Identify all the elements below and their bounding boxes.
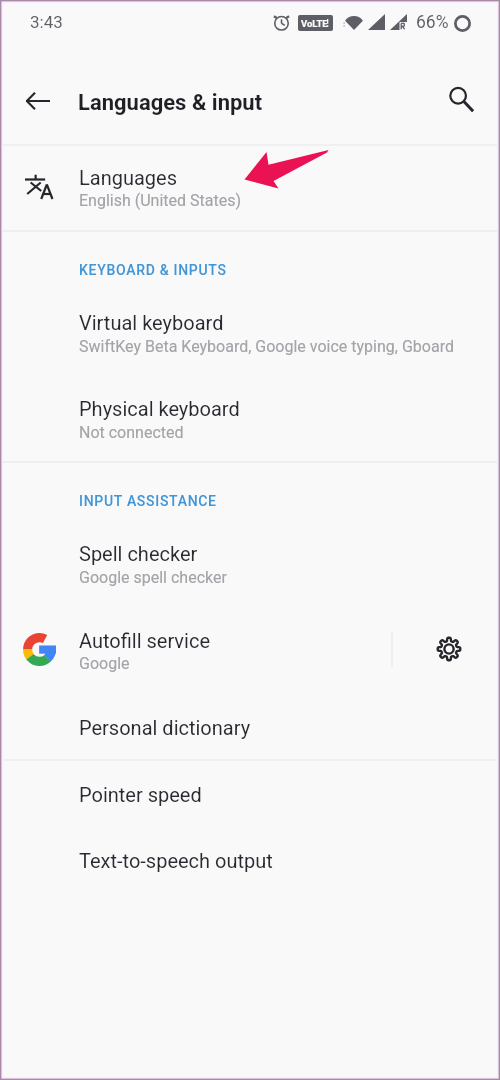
button[interactable]: Autofill service settings bbox=[421, 621, 477, 677]
staticText: Google bbox=[79, 654, 130, 673]
staticText: Pointer speed bbox=[79, 783, 202, 806]
button[interactable] bbox=[0, 520, 500, 601]
staticText: Spell checker bbox=[79, 542, 198, 565]
staticText: SwiftKey Beta Keyboard, Google voice typ… bbox=[79, 337, 454, 356]
staticText: Autofill service bbox=[79, 629, 210, 652]
staticText: Text-to-speech output bbox=[79, 849, 273, 872]
staticText: 3:43 bbox=[30, 12, 63, 32]
staticText: Languages bbox=[79, 166, 177, 189]
staticText: Not connected bbox=[79, 423, 184, 442]
button[interactable] bbox=[0, 827, 500, 894]
staticText: Physical keyboard bbox=[79, 397, 240, 420]
staticText: 66% bbox=[416, 12, 449, 33]
button[interactable] bbox=[0, 760, 500, 827]
staticText: INPUT ASSISTANCE bbox=[79, 493, 217, 509]
button[interactable]: Search bbox=[438, 77, 485, 124]
staticText: Google spell checker bbox=[79, 568, 227, 587]
staticText: English (United States) bbox=[79, 191, 242, 210]
staticText: Languages & input bbox=[78, 90, 263, 116]
staticText: Virtual keyboard bbox=[79, 311, 224, 334]
button[interactable] bbox=[0, 140, 500, 229]
button[interactable] bbox=[0, 694, 500, 759]
staticText: KEYBOARD & INPUTS bbox=[79, 262, 227, 278]
staticText: VoLTE bbox=[301, 18, 328, 29]
staticText: Personal dictionary bbox=[79, 716, 251, 739]
button[interactable] bbox=[0, 288, 500, 371]
button[interactable]: Back bbox=[14, 77, 61, 124]
button[interactable] bbox=[0, 371, 500, 454]
button[interactable] bbox=[0, 601, 500, 682]
